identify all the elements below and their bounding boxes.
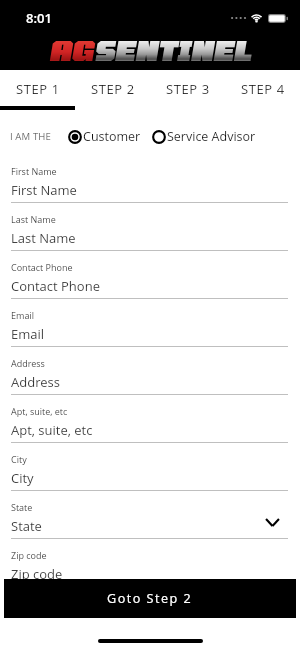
staticText: State xyxy=(11,501,33,513)
staticText: Address xyxy=(11,373,288,391)
button[interactable]: City xyxy=(0,443,300,491)
staticText: First Name xyxy=(11,181,288,199)
staticText: Goto Step 2 xyxy=(107,590,193,607)
staticText: Contact Phone xyxy=(11,261,73,273)
staticText: Address xyxy=(11,357,45,369)
staticText: Last Name xyxy=(11,229,288,247)
staticText: State xyxy=(11,517,273,535)
staticText: Email xyxy=(11,325,288,343)
button[interactable]: Service Advisor xyxy=(152,128,256,145)
staticText: Service Advisor xyxy=(167,128,256,145)
staticText: Customer xyxy=(83,128,141,145)
staticText: Last Name xyxy=(11,213,56,225)
button[interactable]: Apt, suite, etc xyxy=(0,395,300,443)
button[interactable]: STEP 3 xyxy=(150,72,225,106)
button[interactable]: Contact Phone xyxy=(0,251,300,299)
button[interactable]: Goto Step 2 xyxy=(4,579,296,618)
other: Select state xyxy=(265,518,280,527)
button[interactable]: Address xyxy=(0,347,300,395)
staticText: City xyxy=(11,453,27,465)
staticText: Email xyxy=(11,309,34,321)
staticText: STEP 1 xyxy=(16,80,60,98)
staticText: STEP 4 xyxy=(241,80,285,98)
staticText: Zip code xyxy=(11,549,47,561)
staticText: STEP 3 xyxy=(166,80,210,98)
button[interactable]: STEP 1 xyxy=(0,72,75,106)
staticText: Apt, suite, etc xyxy=(11,405,68,417)
staticText: I AM THE xyxy=(10,130,51,143)
button[interactable]: Email xyxy=(0,299,300,347)
staticText: Contact Phone xyxy=(11,277,288,295)
button[interactable]: Zip code xyxy=(0,539,300,587)
staticText: City xyxy=(11,469,288,487)
staticText: 8:01 xyxy=(26,9,52,27)
staticText: Zip code xyxy=(11,565,288,583)
button[interactable]: STEP 2 xyxy=(75,72,150,106)
staticText: First Name xyxy=(11,165,57,177)
button[interactable]: Customer xyxy=(68,128,141,145)
button[interactable]: State xyxy=(0,491,300,539)
staticText: STEP 2 xyxy=(91,80,135,98)
staticText: Apt, suite, etc xyxy=(11,421,288,439)
button[interactable]: Last Name xyxy=(0,203,300,251)
staticText: AG xyxy=(49,35,94,66)
button[interactable]: STEP 4 xyxy=(225,72,300,106)
button[interactable]: First Name xyxy=(0,155,300,203)
staticText: SENTINEL xyxy=(94,35,252,66)
